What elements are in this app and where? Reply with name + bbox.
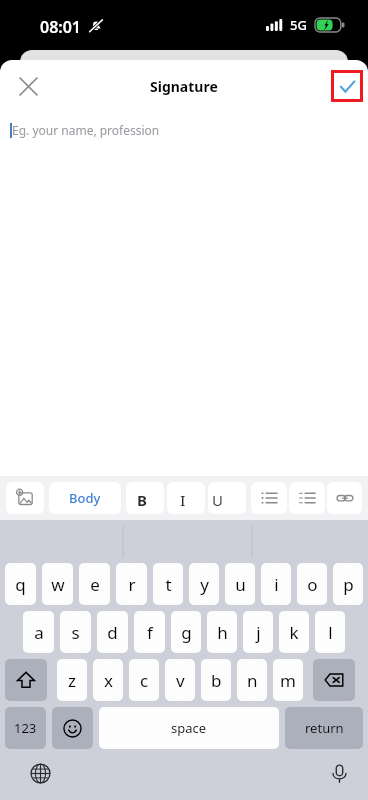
button[interactable]: k <box>279 611 309 653</box>
button[interactable]: s <box>60 611 91 653</box>
button[interactable]: Backspace <box>313 659 355 701</box>
staticText: r <box>128 573 136 596</box>
staticText: B <box>137 490 147 510</box>
button[interactable]: Shift <box>5 659 47 701</box>
staticText: e <box>90 573 100 596</box>
staticText: o <box>307 573 318 596</box>
staticText: u <box>235 573 246 596</box>
staticText: l <box>328 621 333 644</box>
staticText: j <box>256 621 261 644</box>
staticText: p <box>343 573 354 596</box>
button[interactable]: Bold <box>126 482 164 514</box>
button[interactable]: d <box>97 611 128 653</box>
button[interactable]: Change keyboard <box>26 759 54 787</box>
button[interactable]: m <box>273 659 303 701</box>
button[interactable]: Underline <box>208 482 246 514</box>
button[interactable]: l <box>315 611 345 653</box>
staticText: m <box>280 669 296 692</box>
button[interactable]: Insert link <box>327 482 362 514</box>
staticText: Eg. your name, profession <box>12 122 160 138</box>
button[interactable]: h <box>207 611 237 653</box>
button[interactable]: i <box>261 563 291 605</box>
button[interactable]: Body <box>49 482 121 514</box>
staticText: s <box>71 621 80 644</box>
button[interactable]: n <box>237 659 267 701</box>
button[interactable]: z <box>57 659 87 701</box>
staticText: w <box>51 573 65 596</box>
button[interactable]: Numbered list <box>289 482 325 514</box>
staticText: q <box>15 573 26 596</box>
button[interactable]: return <box>285 707 363 749</box>
button[interactable]: w <box>42 563 73 605</box>
button[interactable]: Done <box>331 70 363 102</box>
staticText: n <box>247 669 258 692</box>
staticText: v <box>176 669 185 692</box>
button[interactable]: y <box>189 563 219 605</box>
button[interactable]: j <box>243 611 273 653</box>
button[interactable]: r <box>116 563 147 605</box>
button[interactable]: q <box>5 563 36 605</box>
button[interactable]: e <box>79 563 110 605</box>
staticText: i <box>274 573 279 596</box>
staticText: U <box>212 490 223 510</box>
button[interactable]: Bulleted list <box>251 482 287 514</box>
staticText: f <box>147 621 153 644</box>
button[interactable]: b <box>201 659 231 701</box>
button[interactable]: v <box>165 659 195 701</box>
staticText: x <box>104 669 113 692</box>
staticText: I <box>180 490 186 510</box>
button[interactable]: g <box>171 611 201 653</box>
button[interactable]: Italic <box>167 482 205 514</box>
staticText: t <box>165 573 172 596</box>
staticText: a <box>34 621 44 644</box>
staticText: 5G <box>290 16 307 34</box>
button[interactable]: u <box>225 563 255 605</box>
staticText: 123 <box>14 719 37 737</box>
staticText: Body <box>69 489 101 507</box>
button[interactable]: t <box>153 563 183 605</box>
staticText: d <box>107 621 118 644</box>
staticText: b <box>211 669 222 692</box>
button[interactable]: a <box>23 611 54 653</box>
staticText: return <box>305 719 344 737</box>
button[interactable]: o <box>297 563 327 605</box>
button[interactable]: Dictate <box>325 759 353 787</box>
staticText: space <box>171 719 207 737</box>
button[interactable]: f <box>134 611 165 653</box>
button[interactable]: Insert image <box>6 482 44 514</box>
button[interactable]: c <box>129 659 159 701</box>
button[interactable]: Emoji <box>52 707 93 749</box>
staticText: Signature <box>150 77 218 96</box>
button[interactable]: p <box>333 563 363 605</box>
button[interactable]: x <box>93 659 123 701</box>
staticText: c <box>140 669 149 692</box>
staticText: h <box>217 621 228 644</box>
staticText: g <box>181 621 192 644</box>
button[interactable]: Close <box>8 66 48 106</box>
button[interactable]: 123 <box>5 707 46 749</box>
staticText: k <box>289 621 299 644</box>
staticText: z <box>68 669 76 692</box>
staticText: y <box>200 573 209 596</box>
button[interactable]: space <box>99 707 279 749</box>
staticText: 08:01 <box>40 16 82 38</box>
